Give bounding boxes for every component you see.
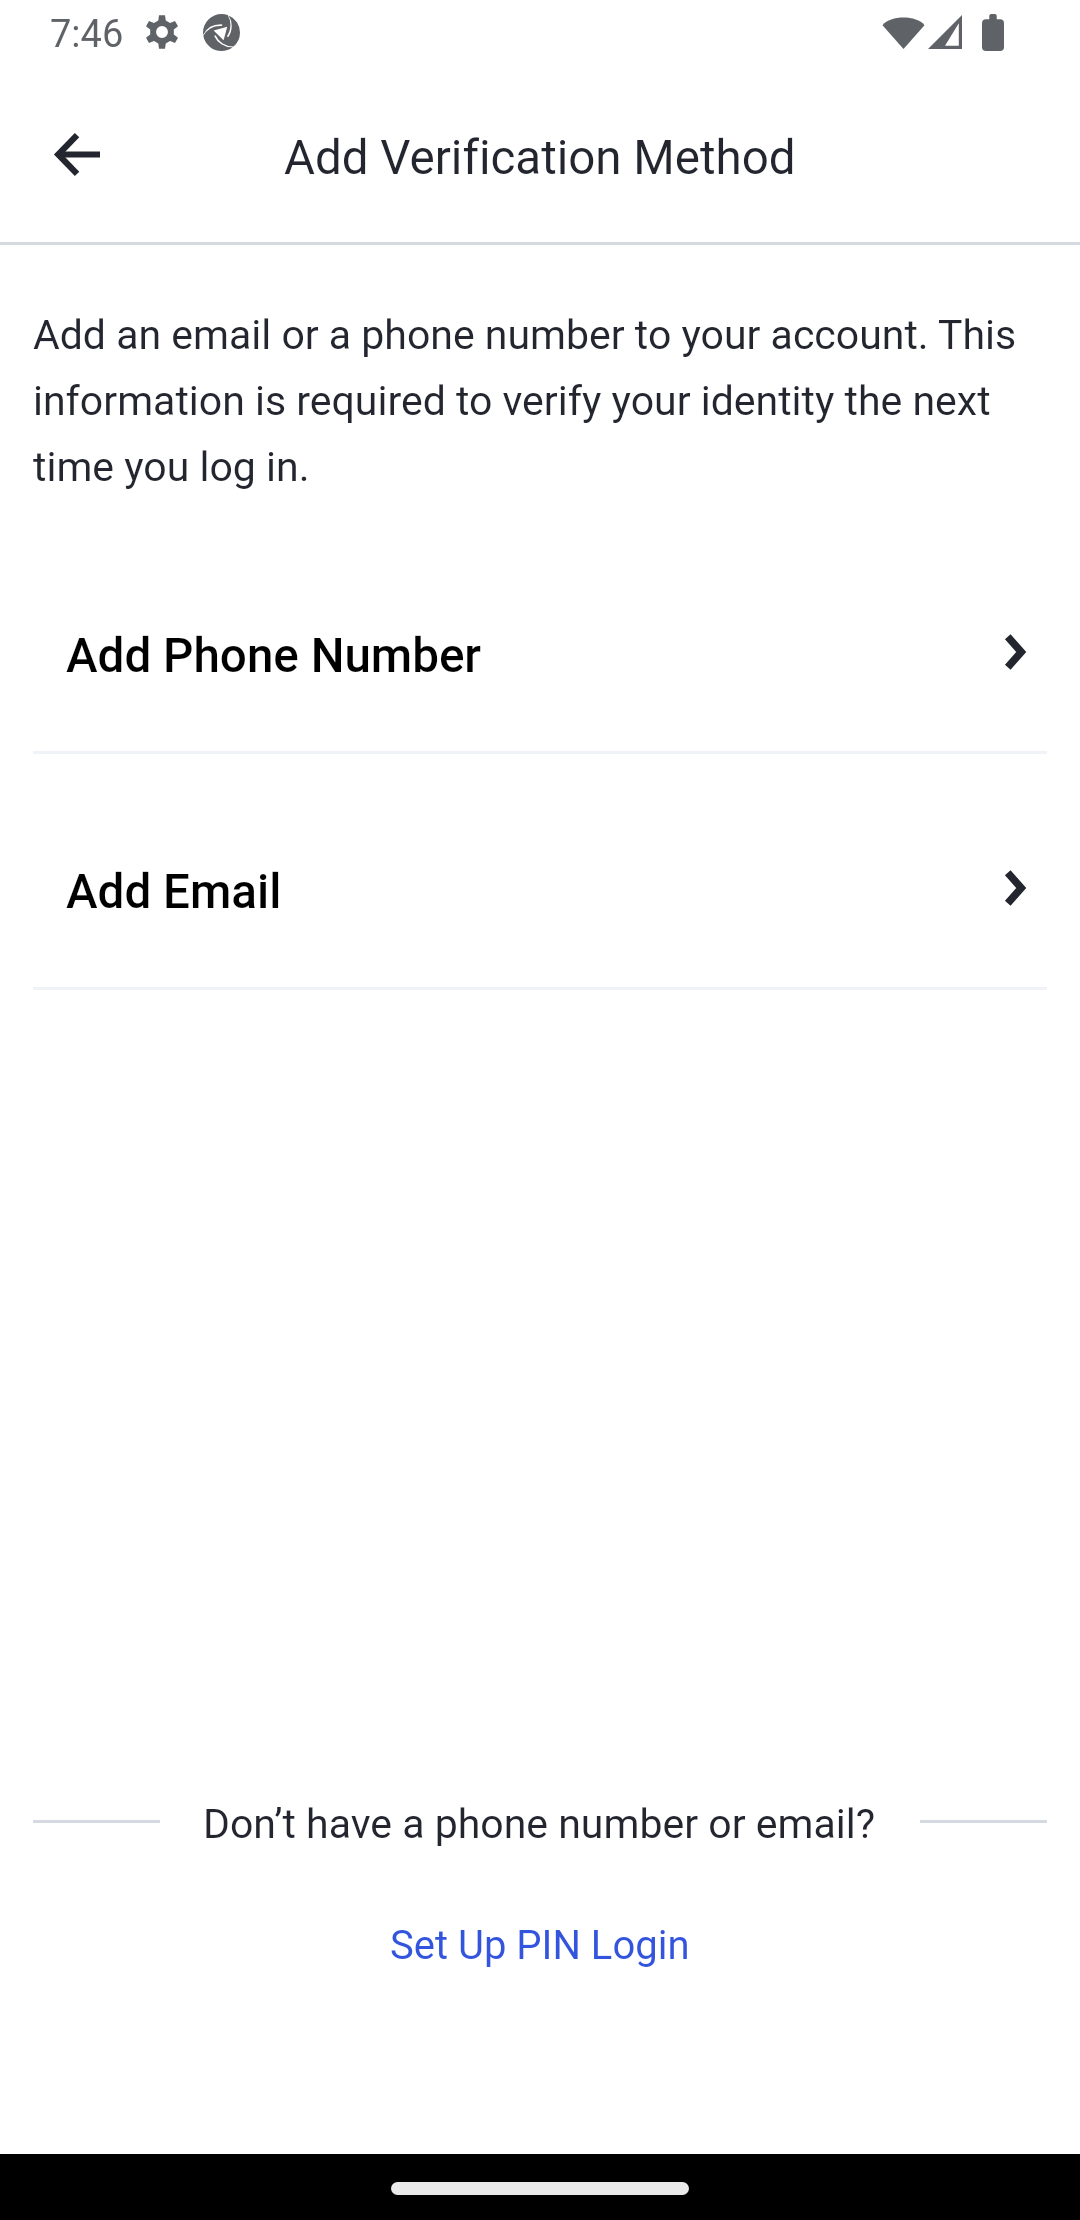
button[interactable]: Add Email [0,754,1080,990]
button[interactable]: Back [33,110,121,198]
staticText: Set Up PIN Login [390,1922,690,1969]
staticText: Add Email [66,864,282,920]
staticText: Add Verification Method [284,130,796,186]
staticText: Add an email or a phone number to your a… [33,311,1017,491]
button[interactable]: Add Phone Number [0,518,1080,754]
staticText: Don’t have a phone number or email? [203,1800,876,1848]
staticText: Add Phone Number [66,628,482,684]
staticText: 7:46 [50,12,124,57]
button[interactable]: Set Up PIN Login [366,1912,714,1979]
